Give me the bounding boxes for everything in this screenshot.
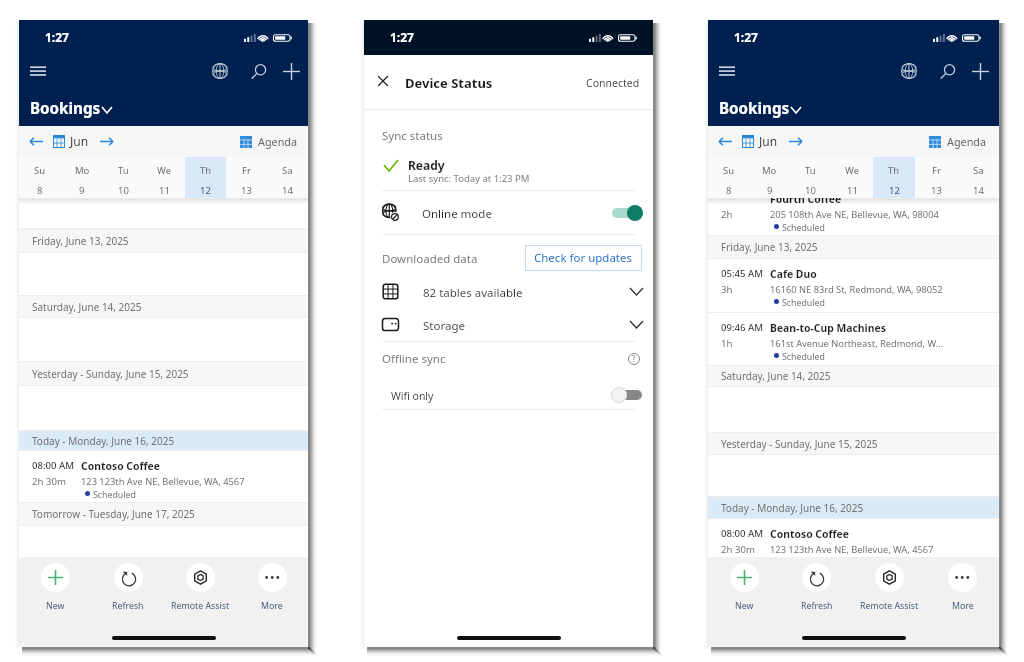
- staticText: Tu: [118, 164, 129, 177]
- button[interactable]: Today - Monday, June 16, 2025: [19, 431, 308, 450]
- button[interactable]: More: [236, 563, 308, 612]
- button[interactable]: Close: [372, 70, 394, 92]
- staticText: Today - Monday, June 16, 2025: [32, 434, 175, 448]
- staticText: Saturday, June 14, 2025: [721, 369, 831, 383]
- staticText: Th: [200, 164, 212, 177]
- staticText: Ready: [408, 157, 445, 173]
- button[interactable]: Tu: [790, 157, 831, 198]
- button[interactable]: Search: [246, 58, 272, 84]
- staticText: 2h: [721, 208, 733, 221]
- button[interactable]: Next month: [96, 131, 118, 152]
- button[interactable]: 08:00 AM: [708, 519, 999, 557]
- staticText: Downloaded data: [382, 251, 478, 267]
- button[interactable]: 2h: [708, 198, 999, 221]
- staticText: 205 108th Ave NE, Bellevue, WA, 98004: [770, 208, 939, 221]
- button[interactable]: Next month: [785, 131, 807, 152]
- button[interactable]: Saturday, June 14, 2025: [19, 296, 308, 317]
- staticText: Friday, June 13, 2025: [32, 234, 129, 248]
- staticText: Scheduled: [782, 297, 825, 309]
- button[interactable]: Fr: [226, 157, 267, 198]
- button[interactable]: Saturday, June 14, 2025: [708, 366, 999, 386]
- button[interactable]: Mo: [749, 157, 790, 198]
- staticText: New: [46, 600, 65, 612]
- button[interactable]: Refresh: [92, 563, 164, 612]
- button[interactable]: Remote Assist: [164, 563, 236, 612]
- button[interactable]: Storage: [364, 307, 653, 341]
- staticText: 13: [931, 184, 942, 197]
- button[interactable]: New: [708, 563, 780, 612]
- button[interactable]: Fr: [915, 157, 957, 198]
- button[interactable]: Bookings: [19, 91, 308, 126]
- button[interactable]: Friday, June 13, 2025: [19, 229, 308, 252]
- button[interactable]: Bookings: [708, 91, 999, 126]
- button[interactable]: Sa: [267, 157, 308, 198]
- button[interactable]: Language: [896, 58, 922, 84]
- button[interactable]: Friday, June 13, 2025: [708, 236, 999, 258]
- button[interactable]: Agenda: [929, 126, 986, 157]
- staticText: Last sync: Today at 1:23 PM: [408, 172, 530, 185]
- staticText: 2h 30m: [721, 543, 755, 556]
- staticText: More: [261, 600, 283, 612]
- button[interactable]: Add: [263, 58, 552, 84]
- staticText: ?: [632, 353, 636, 364]
- button[interactable]: Su: [19, 157, 61, 198]
- staticText: Th: [888, 164, 900, 177]
- staticText: Su: [723, 164, 735, 177]
- button[interactable]: Agenda: [240, 126, 297, 157]
- staticText: 05:45 AM: [721, 267, 764, 280]
- button[interactable]: 09:46 AM: [708, 313, 999, 365]
- button[interactable]: Yesterday - Sunday, June 15, 2025: [708, 433, 999, 454]
- staticText: 8: [37, 184, 43, 197]
- staticText: 11: [159, 184, 170, 197]
- staticText: 12: [200, 184, 211, 197]
- button[interactable]: More: [926, 563, 999, 612]
- staticText: Refresh: [801, 600, 833, 612]
- staticText: Fr: [242, 164, 251, 177]
- button[interactable]: Search: [935, 58, 961, 84]
- button[interactable]: Check for updates: [525, 245, 642, 271]
- button[interactable]: Mo: [61, 157, 103, 198]
- button[interactable]: Today - Monday, June 16, 2025: [708, 497, 999, 518]
- staticText: Bookings: [719, 98, 790, 119]
- button[interactable]: Tu: [103, 157, 144, 198]
- staticText: 1h: [721, 337, 733, 350]
- staticText: Jun: [759, 133, 778, 149]
- button[interactable]: Previous month: [25, 131, 47, 152]
- button[interactable]: Online mode: [364, 191, 653, 234]
- button[interactable]: We: [144, 157, 185, 198]
- button[interactable]: Th: [873, 157, 915, 198]
- staticText: 14: [973, 184, 984, 197]
- button[interactable]: Menu: [25, 59, 51, 85]
- button[interactable]: Add: [952, 58, 1024, 84]
- staticText: 3h: [721, 283, 733, 296]
- button[interactable]: 82 tables available: [364, 274, 653, 308]
- button[interactable]: Refresh: [780, 563, 853, 612]
- staticText: Bean-to-Cup Machines: [770, 321, 886, 335]
- staticText: Refresh: [112, 600, 144, 612]
- staticText: 14: [282, 184, 293, 197]
- button[interactable]: Wifi only: [364, 376, 653, 411]
- button[interactable]: We: [831, 157, 873, 198]
- button[interactable]: 05:45 AM: [708, 259, 999, 312]
- staticText: Friday, June 13, 2025: [721, 240, 818, 254]
- button[interactable]: Su: [708, 157, 749, 198]
- staticText: We: [157, 164, 172, 177]
- staticText: Scheduled: [782, 222, 825, 234]
- button[interactable]: 08:00 AM: [19, 451, 308, 502]
- button[interactable]: New: [19, 563, 92, 612]
- button[interactable]: Tomorrow - Tuesday, June 17, 2025: [19, 503, 308, 525]
- button[interactable]: Help: [625, 350, 642, 367]
- button[interactable]: Sa: [957, 157, 999, 198]
- staticText: More: [952, 600, 974, 612]
- staticText: Device Status: [405, 74, 493, 92]
- button[interactable]: Language: [207, 58, 233, 84]
- staticText: 1:27: [390, 29, 414, 45]
- button[interactable]: Th: [185, 157, 226, 198]
- button[interactable]: Menu: [714, 59, 740, 85]
- staticText: Mo: [75, 164, 90, 177]
- button[interactable]: Previous month: [714, 131, 736, 152]
- button[interactable]: Remote Assist: [853, 563, 926, 612]
- staticText: Check for updates: [534, 250, 633, 266]
- staticText: Mo: [762, 164, 777, 177]
- button[interactable]: Yesterday - Sunday, June 15, 2025: [19, 362, 308, 385]
